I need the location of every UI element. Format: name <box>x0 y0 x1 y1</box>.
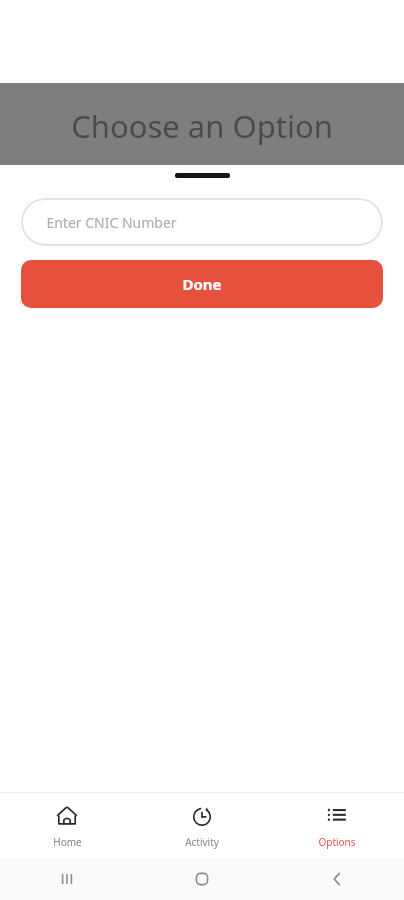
button[interactable]: Back <box>269 858 404 900</box>
button[interactable]: Recent apps <box>0 858 134 900</box>
staticText: Home <box>53 835 82 849</box>
staticText: Options <box>318 835 356 849</box>
staticText: Choose an Option <box>71 105 333 147</box>
button[interactable]: Done <box>21 260 383 308</box>
button[interactable]: Enter CNIC Number <box>21 198 383 246</box>
button[interactable]: Options <box>269 797 404 855</box>
button[interactable]: Activity <box>134 797 269 855</box>
button[interactable]: Home <box>134 858 269 900</box>
button[interactable] <box>175 173 230 178</box>
staticText: Activity <box>185 835 219 849</box>
staticText: Enter CNIC Number <box>46 213 177 232</box>
staticText: Done <box>182 274 222 294</box>
button[interactable]: Home <box>0 797 134 855</box>
